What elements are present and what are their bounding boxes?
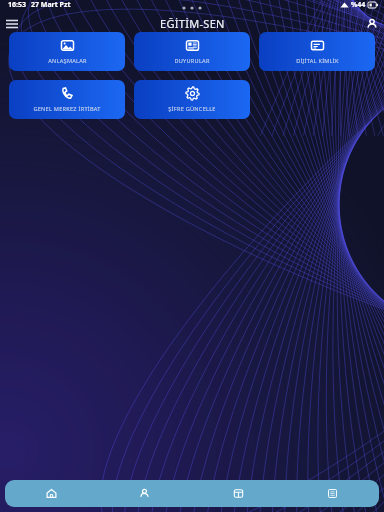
button[interactable]: Documents [285,480,379,507]
button[interactable]: ŞİFRE GÜNCELLE [134,80,250,119]
staticText: DUYURULAR [174,57,210,65]
button[interactable]: Dashboard [191,480,285,507]
button[interactable]: ANLAŞMALAR [9,32,125,71]
staticText: ŞİFRE GÜNCELLE [168,105,216,113]
staticText: 27 Mart Pzt [31,0,71,10]
staticText: GENEL MERKEZ İRTİBAT [33,105,101,113]
button[interactable]: Profile [98,480,191,507]
button[interactable]: Home [5,480,98,507]
staticText: ANLAŞMALAR [48,57,87,65]
staticText: 16:53 [8,0,26,10]
button[interactable]: GENEL MERKEZ İRTİBAT [9,80,125,119]
button[interactable]: DİJİTAL KİMLİK [259,32,375,71]
button[interactable]: Account [363,15,380,32]
button[interactable]: DUYURULAR [134,32,250,71]
staticText: EĞİTİM-SEN [160,16,225,31]
staticText: %44 [351,0,366,10]
button[interactable]: Menu [3,15,20,32]
staticText: DİJİTAL KİMLİK [296,57,339,65]
